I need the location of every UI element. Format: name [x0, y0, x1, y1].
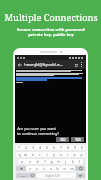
button[interactable]: e	[29, 152, 36, 157]
staticText: 9	[74, 145, 76, 150]
button[interactable]: emoji	[29, 173, 36, 178]
button[interactable]: z	[26, 166, 33, 171]
button[interactable]: Copy	[73, 62, 79, 68]
staticText: b	[56, 166, 59, 171]
button[interactable]: 3	[29, 145, 36, 150]
staticText: k	[72, 159, 74, 164]
button[interactable]: 0	[78, 145, 85, 150]
button[interactable]: a	[18, 159, 26, 164]
staticText: w	[24, 152, 27, 157]
staticText: English (US)	[45, 174, 60, 178]
staticText: g	[50, 159, 53, 164]
button[interactable]: y	[50, 152, 57, 157]
button[interactable]: j	[62, 159, 69, 164]
staticText: Secure connection with password	[17, 27, 85, 32]
button[interactable]: x	[33, 166, 40, 171]
staticText: v	[50, 166, 52, 171]
staticText: c	[43, 166, 45, 171]
staticText: 5	[46, 145, 48, 150]
staticText: t	[46, 152, 48, 157]
staticText: j	[65, 159, 66, 164]
button[interactable]: 2	[22, 145, 29, 150]
button[interactable]: r	[36, 152, 43, 157]
button[interactable]: n	[61, 166, 68, 171]
staticText: l	[79, 159, 80, 164]
staticText: s	[29, 159, 31, 164]
button[interactable]: sym	[16, 173, 29, 178]
staticText: 8	[67, 145, 69, 150]
button[interactable]: m	[68, 166, 75, 171]
staticText: a	[21, 159, 23, 164]
staticText: private key, public key	[28, 32, 74, 37]
staticText: d	[36, 159, 39, 164]
staticText: YES	[75, 138, 81, 142]
button[interactable]: English (US)	[36, 173, 69, 178]
staticText: Multiple Connections	[4, 11, 98, 24]
button[interactable]: c	[40, 166, 47, 171]
staticText: f	[44, 159, 46, 164]
button[interactable]: YES	[71, 137, 84, 142]
button[interactable]: More options	[79, 62, 84, 67]
staticText: 6	[53, 145, 55, 150]
button[interactable]: Back	[17, 62, 23, 68]
button[interactable]: shift	[16, 166, 26, 171]
button[interactable]: w	[22, 152, 29, 157]
button[interactable]: enter	[76, 173, 85, 178]
button[interactable]: i	[64, 152, 71, 157]
staticText: r	[39, 152, 41, 157]
button[interactable]: v	[47, 166, 54, 171]
staticText: hasmjkl@ltyuokl.n...	[24, 62, 63, 67]
staticText: p	[80, 152, 83, 157]
button[interactable]: l	[76, 159, 83, 164]
button[interactable]: 5	[43, 145, 50, 150]
button[interactable]: b	[54, 166, 61, 171]
staticText: 0	[81, 145, 83, 150]
staticText: i	[67, 152, 68, 157]
button[interactable]: f	[41, 159, 48, 164]
button[interactable]: g	[48, 159, 55, 164]
button[interactable]: 6	[50, 145, 57, 150]
staticText: 1	[18, 145, 20, 150]
button[interactable]: q	[16, 152, 22, 157]
button[interactable]: 7	[57, 145, 64, 150]
button[interactable]: h	[55, 159, 62, 164]
staticText: NO	[60, 138, 66, 142]
button[interactable]: 4	[36, 145, 43, 150]
staticText: h	[57, 159, 60, 164]
staticText: Are you sure you want	[17, 126, 56, 131]
button[interactable]: k	[69, 159, 76, 164]
staticText: y	[53, 152, 55, 157]
button[interactable]: del	[75, 166, 85, 171]
staticText: q	[18, 152, 21, 157]
button[interactable]: 8	[64, 145, 71, 150]
button[interactable]: NO	[56, 137, 69, 142]
staticText: ?123	[20, 174, 26, 177]
button[interactable]: p	[78, 152, 85, 157]
staticText: n	[63, 166, 66, 171]
button[interactable]: u	[57, 152, 64, 157]
button[interactable]: d	[34, 159, 41, 164]
staticText: e	[32, 152, 34, 157]
staticText: 4	[39, 145, 41, 150]
staticText: .	[72, 174, 73, 178]
button[interactable]: 9	[71, 145, 78, 150]
staticText: 7	[60, 145, 62, 150]
button[interactable]: .	[69, 173, 76, 178]
staticText: to continue connecting?	[17, 131, 59, 136]
button[interactable]: s	[26, 159, 34, 164]
button[interactable]: o	[71, 152, 78, 157]
staticText: o	[73, 152, 76, 157]
staticText: 3	[32, 145, 34, 150]
button[interactable]: t	[43, 152, 50, 157]
button[interactable]: 1	[16, 145, 22, 150]
staticText: u	[59, 152, 62, 157]
staticText: x	[36, 166, 38, 171]
staticText: m	[70, 166, 74, 171]
staticText: z	[29, 166, 31, 171]
staticText: 2	[25, 145, 27, 150]
